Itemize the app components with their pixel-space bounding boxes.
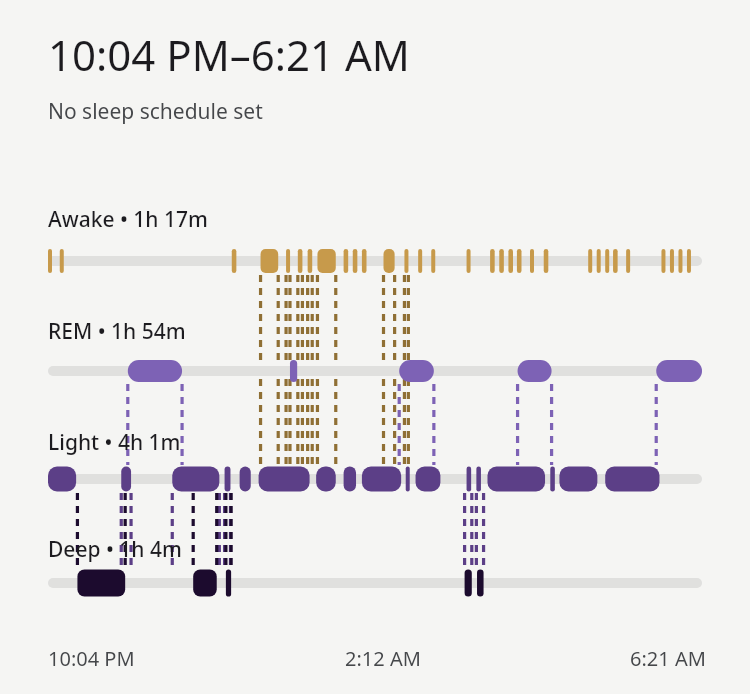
staticText: REM • 1h 54m	[48, 317, 186, 346]
staticText: 10:04 PM–6:21 AM	[48, 26, 410, 83]
staticText: Awake • 1h 17m	[48, 205, 208, 234]
staticText: No sleep schedule set	[48, 97, 263, 126]
staticText: 2:12 AM	[345, 645, 421, 672]
staticText: 10:04 PM	[48, 645, 135, 672]
staticText: Deep • 1h 4m	[48, 535, 182, 564]
staticText: Light • 4h 1m	[48, 428, 181, 457]
button[interactable]: Sleep stages chart	[0, 0, 750, 694]
staticText: 6:21 AM	[630, 645, 706, 672]
